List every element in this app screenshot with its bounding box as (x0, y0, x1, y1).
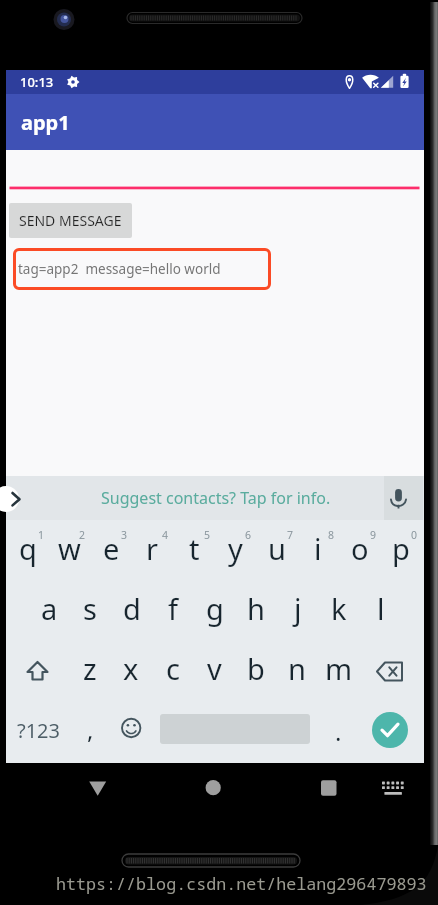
button[interactable]: c (152, 646, 194, 698)
button[interactable]: a (28, 586, 70, 638)
button[interactable]: tag=app2 message=hello world (13, 248, 271, 290)
button[interactable]: Switch keyboard (371, 763, 415, 811)
staticText: , (87, 713, 94, 746)
staticText: e (103, 529, 120, 568)
button[interactable]: o (339, 526, 381, 578)
staticText: 9 (370, 528, 377, 542)
staticText: 8 (328, 528, 335, 542)
staticText: p (392, 529, 410, 568)
staticText: l (377, 589, 385, 628)
staticText: y (228, 529, 243, 568)
staticText: f (168, 589, 178, 628)
staticText: t (189, 529, 200, 568)
staticText: 3 (121, 528, 128, 542)
button[interactable]: Backspace (361, 645, 423, 697)
button[interactable]: z (69, 646, 111, 698)
button[interactable]: SEND MESSAGE (9, 203, 132, 238)
button[interactable]: h (235, 586, 277, 638)
button[interactable]: u (256, 526, 298, 578)
staticText: q (19, 529, 37, 568)
staticText: d (123, 589, 141, 628)
staticText: i (314, 529, 322, 568)
button[interactable]: Suggest contacts? Tap for info. (101, 487, 331, 509)
staticText: . (335, 715, 342, 748)
staticText: u (268, 529, 286, 568)
staticText: r (146, 529, 158, 568)
button[interactable]: s (69, 586, 111, 638)
button[interactable]: m (318, 646, 360, 698)
button[interactable]: f (152, 586, 194, 638)
staticText: s (83, 589, 97, 628)
button[interactable]: d (111, 586, 153, 638)
staticText: o (351, 529, 369, 568)
button[interactable]: v (193, 646, 235, 698)
button[interactable]: Home (188, 763, 240, 811)
staticText: tag=app2 message=hello world (18, 260, 221, 278)
staticText: 2 (79, 528, 86, 542)
button[interactable]: g (194, 586, 236, 638)
staticText: 4 (162, 528, 169, 542)
button[interactable]: x (110, 646, 152, 698)
staticText: g (206, 589, 224, 628)
staticText: v (207, 649, 222, 688)
staticText: z (83, 649, 97, 688)
button[interactable]: q (7, 526, 49, 578)
staticText: h (247, 589, 265, 628)
staticText: Suggest contacts? Tap for info. (101, 487, 331, 509)
button[interactable]: Expand suggestions (0, 486, 19, 512)
button[interactable]: Emoji (111, 705, 151, 755)
button[interactable]: . (320, 705, 356, 755)
button[interactable]: Voice input (384, 476, 423, 520)
button[interactable]: k (318, 586, 360, 638)
staticText: SEND MESSAGE (19, 211, 122, 230)
staticText: b (247, 649, 265, 688)
staticText: m (325, 649, 353, 688)
staticText: app1 (21, 109, 70, 136)
button[interactable]: y (214, 526, 256, 578)
button[interactable]: t (173, 526, 215, 578)
staticText: j (294, 589, 302, 628)
staticText: 5 (204, 528, 211, 542)
staticText: n (288, 649, 306, 688)
button[interactable]: Recent apps (303, 763, 355, 811)
staticText: w (58, 529, 81, 568)
button[interactable]: Shift (6, 645, 68, 697)
staticText: 1 (38, 528, 45, 542)
button[interactable]: i (297, 526, 339, 578)
button[interactable]: n (276, 646, 318, 698)
button[interactable]: p (380, 526, 422, 578)
staticText: 10:13 (20, 73, 54, 91)
button[interactable]: l (360, 586, 402, 638)
button[interactable]: j (277, 586, 319, 638)
staticText: 6 (245, 528, 252, 542)
staticText: ?123 (17, 717, 60, 744)
staticText: a (41, 589, 58, 628)
staticText: c (166, 649, 180, 688)
button[interactable]: app1 (6, 94, 424, 150)
button[interactable]: b (235, 646, 277, 698)
staticText: https://blog.csdn.net/helang296479893 (56, 872, 427, 895)
staticText: k (331, 589, 347, 628)
button[interactable]: ?123 (7, 705, 69, 755)
button[interactable]: e (90, 526, 132, 578)
button[interactable]: , (72, 705, 108, 755)
button[interactable]: Enter (372, 712, 408, 748)
staticText: 0 (411, 528, 418, 542)
button[interactable]: r (131, 526, 173, 578)
staticText: x (123, 649, 139, 688)
staticText: 7 (287, 528, 294, 542)
button[interactable]: w (48, 526, 90, 578)
button[interactable]: Back (72, 763, 124, 811)
